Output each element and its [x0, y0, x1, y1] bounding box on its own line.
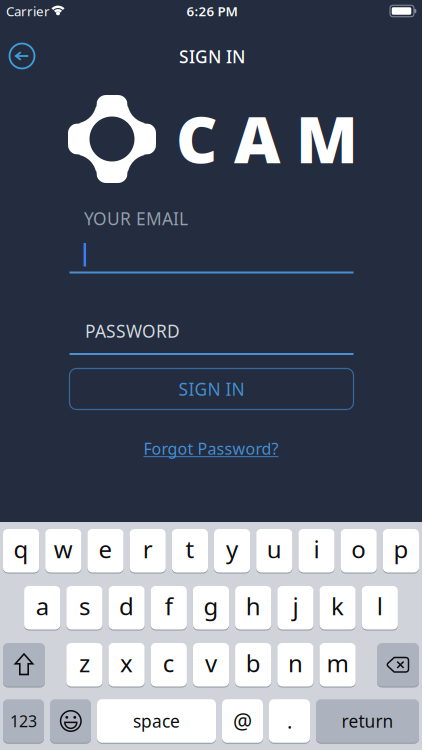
- button[interactable]: Forgot Password?: [143, 438, 278, 459]
- button[interactable]: c: [151, 643, 187, 686]
- staticText: i: [313, 533, 319, 565]
- button[interactable]: x: [108, 643, 145, 686]
- staticText: l: [377, 590, 383, 622]
- staticText: q: [14, 533, 29, 565]
- button[interactable]: a: [24, 586, 60, 629]
- button[interactable]: return: [316, 699, 419, 743]
- staticText: u: [267, 533, 282, 565]
- button[interactable]: k: [319, 586, 356, 629]
- button[interactable]: @: [222, 699, 263, 743]
- button[interactable]: y: [214, 529, 250, 572]
- button[interactable]: [50, 699, 91, 743]
- staticText: Carrier: [6, 2, 50, 20]
- button[interactable]: [9, 43, 34, 68]
- staticText: PASSWORD: [85, 319, 180, 342]
- staticText: return: [341, 709, 393, 732]
- staticText: c: [163, 647, 175, 679]
- staticText: n: [288, 647, 303, 679]
- staticText: t: [185, 533, 194, 565]
- staticText: m: [327, 647, 349, 679]
- staticText: SIGN IN: [179, 45, 245, 68]
- button[interactable]: i: [298, 529, 335, 572]
- button[interactable]: u: [256, 529, 292, 572]
- button[interactable]: [377, 643, 419, 686]
- button[interactable]: o: [341, 529, 377, 572]
- staticText: k: [331, 590, 344, 622]
- staticText: YOUR EMAIL: [84, 207, 188, 230]
- staticText: g: [203, 590, 218, 622]
- staticText: 6:26 PM: [186, 2, 237, 20]
- button[interactable]: [3, 643, 45, 686]
- button[interactable]: m: [319, 643, 356, 686]
- staticText: 123: [10, 710, 37, 732]
- button[interactable]: t: [172, 529, 208, 572]
- button[interactable]: b: [235, 643, 271, 686]
- staticText: h: [246, 590, 261, 622]
- staticText: j: [292, 590, 298, 622]
- button[interactable]: z: [66, 643, 102, 686]
- button[interactable]: w: [45, 529, 81, 572]
- button[interactable]: j: [277, 586, 313, 629]
- button[interactable]: .: [269, 699, 310, 743]
- staticText: r: [143, 533, 153, 565]
- button[interactable]: d: [108, 586, 145, 629]
- staticText: o: [351, 533, 366, 565]
- staticText: @: [233, 707, 252, 735]
- staticText: a: [36, 590, 49, 622]
- button[interactable]: n: [277, 643, 313, 686]
- staticText: space: [133, 709, 180, 732]
- staticText: w: [54, 533, 73, 565]
- staticText: e: [98, 533, 112, 565]
- button[interactable]: l: [362, 586, 398, 629]
- button[interactable]: r: [130, 529, 166, 572]
- staticText: y: [226, 533, 238, 565]
- button[interactable]: space: [97, 699, 216, 743]
- staticText: z: [79, 647, 90, 679]
- staticText: x: [120, 647, 133, 679]
- button[interactable]: q: [3, 529, 39, 572]
- staticText: v: [205, 647, 217, 679]
- button[interactable]: p: [383, 529, 419, 572]
- staticText: s: [79, 590, 90, 622]
- button[interactable]: v: [193, 643, 229, 686]
- staticText: SIGN IN: [178, 377, 244, 400]
- button[interactable]: h: [235, 586, 271, 629]
- staticText: b: [246, 647, 261, 679]
- button[interactable]: g: [193, 586, 229, 629]
- staticText: d: [119, 590, 134, 622]
- button[interactable]: SIGN IN: [69, 368, 353, 409]
- button[interactable]: f: [151, 586, 187, 629]
- button[interactable]: s: [66, 586, 102, 629]
- staticText: .: [287, 708, 292, 734]
- staticText: p: [393, 533, 408, 565]
- staticText: Forgot Password?: [143, 438, 278, 459]
- button[interactable]: e: [87, 529, 124, 572]
- staticText: f: [165, 590, 173, 622]
- button[interactable]: 123: [3, 699, 44, 743]
- staticText: CAM: [176, 96, 358, 181]
